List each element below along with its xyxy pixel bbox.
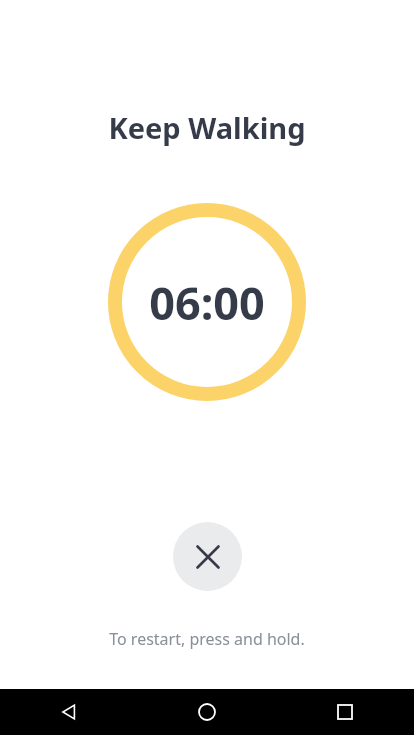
button[interactable]: Home xyxy=(138,689,276,735)
staticText: 06:00 xyxy=(149,272,265,333)
staticText: Keep Walking xyxy=(108,108,306,147)
button[interactable]: Stop timer xyxy=(173,522,242,591)
staticText: To restart, press and hold. xyxy=(109,628,305,650)
button[interactable]: Back xyxy=(0,689,138,735)
button[interactable]: Recent apps xyxy=(276,689,414,735)
